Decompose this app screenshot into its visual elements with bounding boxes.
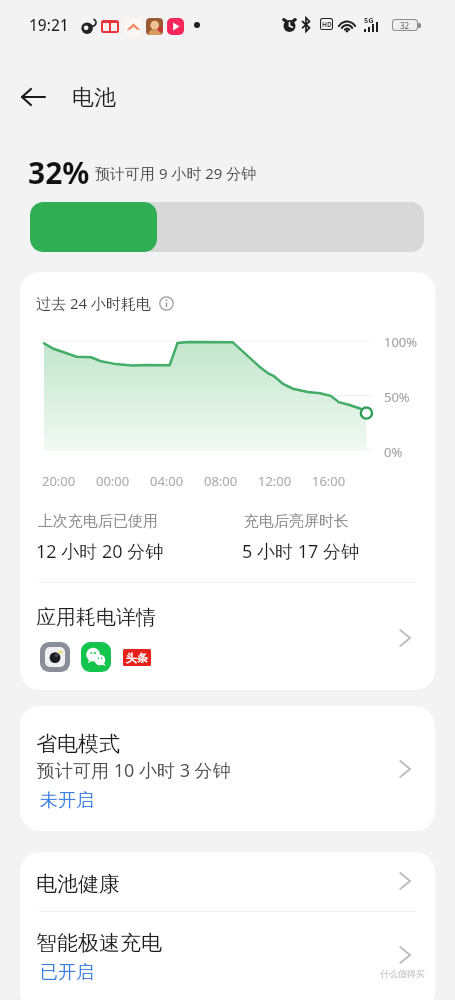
staticText: 20:00 (42, 472, 76, 490)
staticText: 预计可用 9 小时 29 分钟 (95, 163, 257, 183)
staticText: 00:00 (96, 472, 130, 490)
staticText: HD (322, 20, 332, 29)
staticText: 上次充电后已使用 (38, 512, 158, 531)
staticText: 08:00 (204, 472, 238, 490)
staticText: 32 (400, 20, 410, 30)
staticText: 省电模式 (36, 731, 120, 757)
staticText: 充电后亮屏时长 (244, 512, 349, 531)
staticText: 电池健康 (36, 871, 120, 897)
staticText: 头条 (126, 651, 148, 665)
button[interactable]: 电池健康 (20, 852, 435, 911)
staticText: 5G (364, 15, 374, 25)
staticText: 19:21 (29, 14, 69, 35)
staticText: 16:00 (312, 472, 346, 490)
staticText: 100% (384, 333, 418, 349)
staticText: 50% (384, 388, 410, 404)
staticText: 智能极速充电 (36, 930, 162, 956)
staticText: 5 小时 17 分钟 (242, 539, 359, 564)
staticText: 0% (384, 443, 403, 459)
staticText: 过去 24 小时耗电 (36, 293, 151, 313)
staticText: 未开启 (40, 789, 94, 812)
button[interactable]: 智能极速充电 (20, 912, 435, 1000)
staticText: 已开启 (40, 961, 94, 984)
staticText: 电池 (72, 84, 116, 112)
staticText: 04:00 (150, 472, 184, 490)
staticText: 32% (28, 152, 90, 193)
staticText: 什么值得买 (380, 968, 425, 979)
staticText: 应用耗电详情 (36, 605, 156, 630)
button[interactable]: Back (13, 77, 53, 117)
button[interactable]: 应用耗电详情 (20, 583, 435, 690)
staticText: 12:00 (258, 472, 292, 490)
staticText: 预计可用 10 小时 3 分钟 (37, 758, 231, 783)
staticText: 12 小时 20 分钟 (36, 539, 164, 564)
button[interactable]: 省电模式 (20, 706, 435, 831)
